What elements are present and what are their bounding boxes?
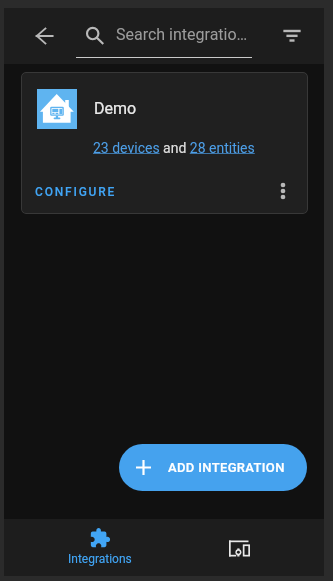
button[interactable]: ADD INTEGRATION [119,444,307,491]
staticText: Demo [94,99,137,118]
staticText: ADD INTEGRATION [168,460,285,475]
staticText: Integrations [68,552,132,566]
staticText: CONFIGURE [35,185,117,199]
button[interactable]: More options [267,175,299,207]
button[interactable]: CONFIGURE [27,179,125,205]
button[interactable]: Search [76,17,108,49]
staticText: 23 devices and 28 entities [93,140,255,156]
button[interactable]: Demo [21,72,308,214]
button[interactable]: Integrations [20,519,180,576]
staticText: Search integratio… [116,25,248,44]
button[interactable]: Devices [160,519,319,576]
button[interactable]: Back [24,16,64,56]
button[interactable]: Filter [272,15,312,55]
